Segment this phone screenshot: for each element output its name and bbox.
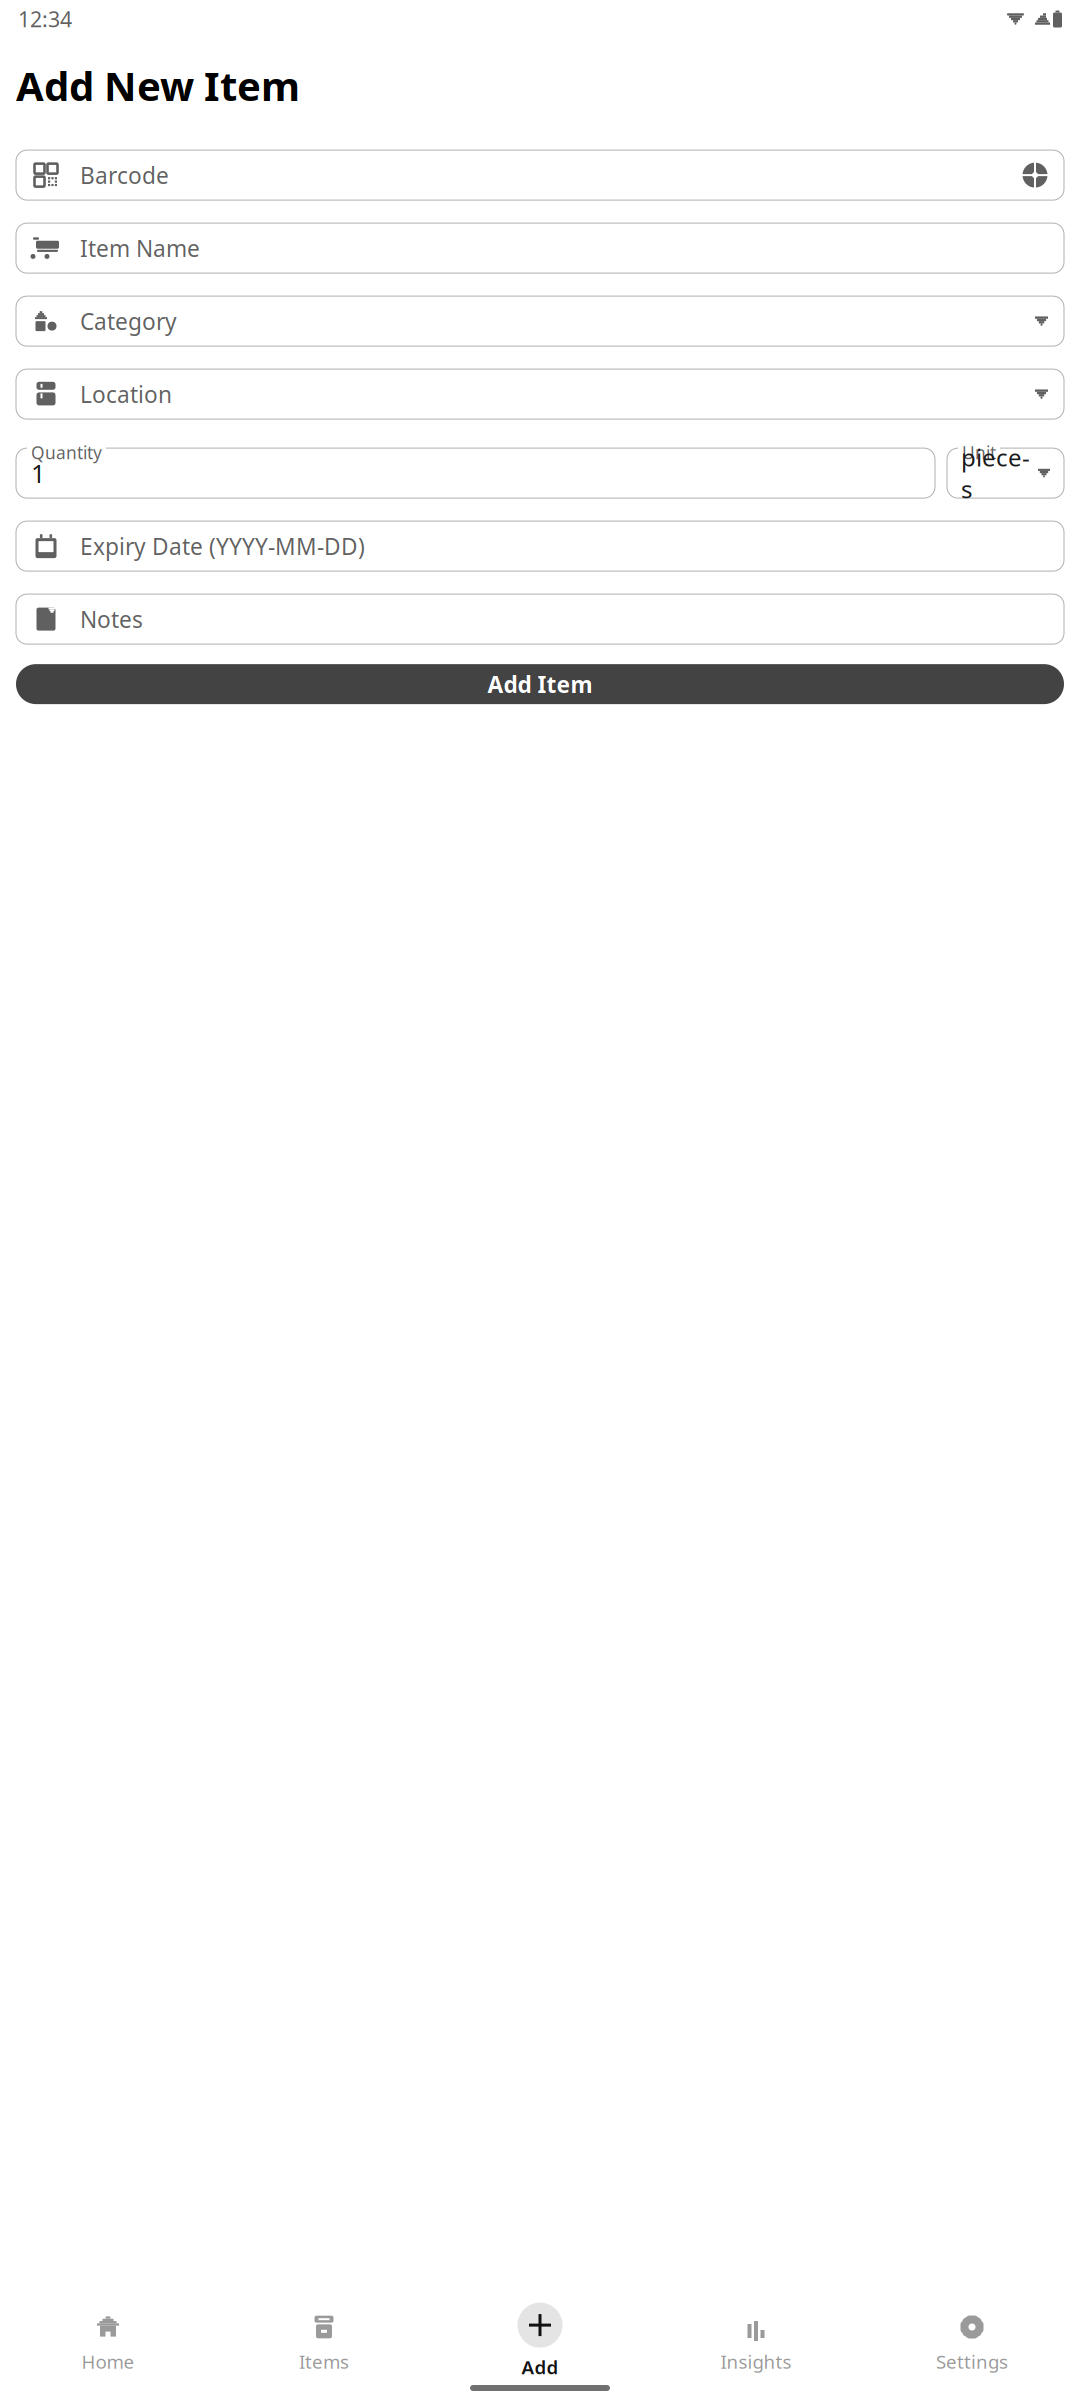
button[interactable]: Add	[432, 2305, 648, 2385]
staticText: Add New Item	[16, 59, 300, 112]
staticText: 12:34	[18, 5, 72, 33]
staticText: Add	[521, 2355, 558, 2379]
staticText: pieces	[961, 441, 1030, 505]
staticText: Home	[81, 2349, 134, 2374]
button[interactable]: Location	[16, 369, 1064, 419]
button[interactable]: Add Item	[16, 664, 1064, 704]
staticText: Location	[80, 379, 172, 409]
button[interactable]: Expiry Date (YYYY-MM-DD)	[16, 521, 1064, 571]
staticText: Unit	[962, 441, 996, 464]
staticText: Barcode	[80, 160, 169, 190]
button[interactable]: Category	[16, 296, 1064, 346]
staticText: 1	[31, 456, 45, 490]
button[interactable]: Settings	[864, 2305, 1080, 2385]
button[interactable]: Barcode	[16, 150, 1064, 200]
button[interactable]: Quantity	[16, 441, 935, 498]
button[interactable]: Unit	[947, 441, 1064, 498]
staticText: Notes	[80, 604, 143, 634]
staticText: Items	[299, 2349, 349, 2374]
button[interactable]: Home	[0, 2305, 216, 2385]
staticText: Insights	[720, 2349, 791, 2374]
staticText: Quantity	[31, 441, 102, 464]
button[interactable]: Insights	[648, 2305, 864, 2385]
staticText: Add Item	[487, 669, 592, 699]
staticText: Settings	[936, 2349, 1008, 2374]
button[interactable]: Items	[216, 2305, 432, 2385]
staticText: Item Name	[80, 233, 200, 263]
button[interactable]: Notes	[16, 594, 1064, 644]
button[interactable]: Item Name	[16, 223, 1064, 273]
staticText: Category	[80, 306, 177, 336]
staticText: Expiry Date (YYYY-MM-DD)	[80, 531, 365, 561]
